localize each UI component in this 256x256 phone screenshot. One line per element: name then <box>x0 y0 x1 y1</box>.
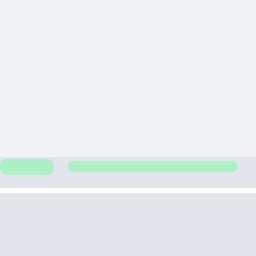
button[interactable]: Selected tag <box>0 157 54 175</box>
button[interactable]: Progress <box>68 157 238 172</box>
